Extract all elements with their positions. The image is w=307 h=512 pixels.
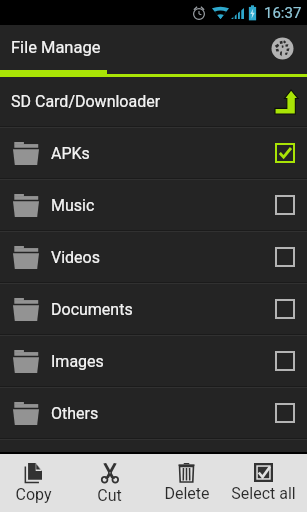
button[interactable]: Delete [148, 454, 225, 512]
staticText: Others [51, 404, 275, 423]
button[interactable]: Browser [270, 36, 294, 60]
button[interactable]: Music [0, 180, 307, 230]
staticText: File Manage [11, 38, 101, 57]
button[interactable]: Videos [0, 232, 307, 282]
button[interactable]: Select all [225, 454, 302, 512]
button[interactable]: Copy [0, 454, 71, 512]
button[interactable]: Not selected [275, 247, 295, 267]
staticText: Cut [97, 486, 122, 505]
staticText: Music [51, 196, 275, 215]
staticText: Select all [231, 484, 296, 503]
button[interactable]: Up one level [274, 89, 299, 114]
button[interactable]: Documents [0, 284, 307, 334]
staticText: Documents [51, 300, 275, 319]
staticText: 16:37 [264, 4, 302, 22]
staticText: Images [51, 352, 275, 371]
button[interactable]: Others [0, 388, 307, 438]
staticText: Delete [164, 484, 210, 503]
staticText: SD Card/Downloader [11, 92, 161, 111]
button[interactable]: Not selected [275, 351, 295, 371]
staticText: APKs [51, 144, 275, 163]
staticText: Copy [15, 485, 52, 504]
button[interactable]: Cut [71, 454, 148, 512]
button[interactable]: Selected [275, 143, 295, 163]
button[interactable]: APKs [0, 128, 307, 178]
button[interactable]: SD Card/Downloader [0, 77, 307, 126]
button[interactable]: Not selected [275, 195, 295, 215]
button[interactable]: Not selected [275, 403, 295, 423]
staticText: Videos [51, 248, 275, 267]
button[interactable]: Images [0, 336, 307, 386]
button[interactable]: Not selected [275, 299, 295, 319]
